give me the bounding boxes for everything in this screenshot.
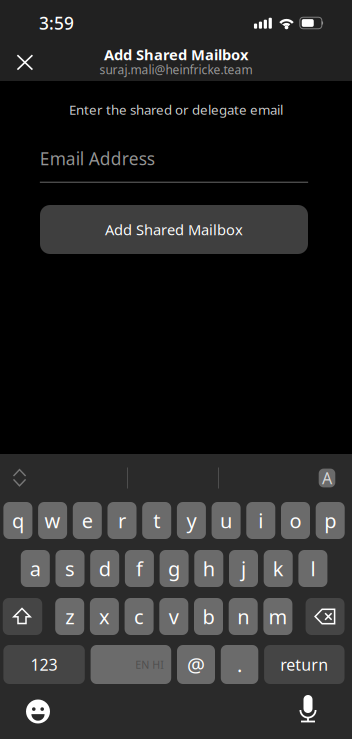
- staticText: f: [136, 555, 143, 582]
- button[interactable]: u: [212, 502, 241, 539]
- button[interactable]: Voice input: [286, 689, 330, 733]
- staticText: c: [134, 603, 144, 630]
- button[interactable]: j: [229, 550, 258, 587]
- staticText: i: [258, 507, 263, 534]
- button[interactable]: Shift: [3, 598, 42, 635]
- staticText: w: [45, 507, 61, 534]
- staticText: suraj.mali@heinfricke.team: [99, 61, 252, 77]
- button[interactable]: k: [264, 550, 293, 587]
- staticText: y: [186, 507, 196, 534]
- staticText: n: [237, 603, 249, 630]
- button[interactable]: Backspace: [306, 598, 344, 635]
- staticText: return: [280, 654, 328, 675]
- button[interactable]: a: [21, 550, 50, 587]
- button[interactable]: n: [229, 598, 258, 635]
- staticText: a: [30, 555, 41, 582]
- button[interactable]: z: [55, 598, 84, 635]
- button[interactable]: o: [281, 502, 310, 539]
- staticText: .: [237, 651, 242, 678]
- staticText: l: [310, 555, 315, 582]
- staticText: u: [220, 507, 232, 534]
- staticText: Add Shared Mailbox: [105, 220, 243, 239]
- staticText: v: [169, 603, 179, 630]
- staticText: q: [12, 507, 24, 534]
- staticText: g: [168, 555, 180, 582]
- button[interactable]: e: [73, 502, 102, 539]
- staticText: Add Shared Mailbox: [104, 45, 248, 64]
- button[interactable]: d: [90, 550, 119, 587]
- staticText: 3:59: [39, 11, 74, 34]
- button[interactable]: w: [38, 502, 67, 539]
- staticText: m: [268, 603, 287, 630]
- staticText: d: [99, 555, 111, 582]
- button[interactable]: c: [125, 598, 154, 635]
- staticText: o: [289, 507, 301, 534]
- button[interactable]: q: [3, 502, 32, 539]
- button[interactable]: i: [246, 502, 275, 539]
- button[interactable]: r: [107, 502, 136, 539]
- button[interactable]: l: [298, 550, 327, 587]
- button[interactable]: return: [264, 645, 344, 684]
- button[interactable]: t: [142, 502, 171, 539]
- staticText: x: [99, 603, 110, 630]
- staticText: r: [118, 507, 126, 534]
- staticText: z: [65, 603, 74, 630]
- staticText: Enter the shared or delegate email: [69, 101, 283, 118]
- button[interactable]: .: [221, 645, 258, 684]
- staticText: s: [65, 555, 75, 582]
- button[interactable]: Add Shared Mailbox: [40, 205, 308, 254]
- staticText: 123: [31, 654, 58, 675]
- button[interactable]: Emoji: [16, 689, 60, 733]
- staticText: b: [202, 603, 214, 630]
- button[interactable]: @: [177, 645, 215, 684]
- button[interactable]: s: [55, 550, 84, 587]
- button[interactable]: h: [194, 550, 223, 587]
- staticText: e: [82, 507, 93, 534]
- button[interactable]: Expand keyboard: [2, 461, 36, 495]
- staticText: Email Address: [40, 147, 155, 170]
- button[interactable]: g: [160, 550, 189, 587]
- button[interactable]: Text formatting: [319, 469, 335, 487]
- button[interactable]: f: [125, 550, 154, 587]
- button[interactable]: y: [177, 502, 206, 539]
- staticText: @: [187, 651, 205, 678]
- staticText: A: [322, 467, 332, 489]
- button[interactable]: 123: [3, 645, 85, 684]
- button[interactable]: Space: [91, 645, 171, 684]
- staticText: k: [273, 555, 284, 582]
- staticText: j: [241, 555, 246, 582]
- button[interactable]: Close: [0, 38, 50, 81]
- button[interactable]: m: [263, 598, 292, 635]
- button[interactable]: v: [159, 598, 188, 635]
- staticText: t: [153, 507, 160, 534]
- staticText: p: [324, 507, 336, 534]
- button[interactable]: b: [194, 598, 223, 635]
- staticText: EN HI: [135, 657, 164, 672]
- button[interactable]: x: [90, 598, 119, 635]
- button[interactable]: p: [316, 502, 345, 539]
- staticText: h: [203, 555, 215, 582]
